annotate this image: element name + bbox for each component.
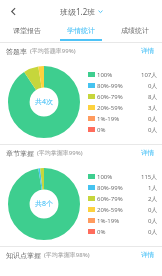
button[interactable]: 学情统计 xyxy=(54,22,108,39)
staticText: 107人 xyxy=(141,71,158,79)
staticText: (平均掌握率98%) xyxy=(44,251,90,259)
staticText: 0人 xyxy=(148,82,158,90)
staticText: (平均掌握率99%) xyxy=(37,149,83,157)
staticText: 80%-99% xyxy=(97,184,123,192)
staticText: 20%-59% xyxy=(97,206,123,214)
staticText: 60%-79% xyxy=(97,195,123,203)
staticText: 0% xyxy=(97,228,106,236)
staticText: 100% xyxy=(97,71,113,79)
staticText: 60%-79% xyxy=(97,93,123,101)
staticText: 1人 xyxy=(148,184,158,192)
staticText: 班级1.2班 xyxy=(60,6,96,17)
staticText: 章节掌握 xyxy=(6,149,34,158)
staticText: 详情 xyxy=(141,251,154,259)
staticText: 课堂报告 xyxy=(13,26,41,35)
button[interactable]: 详情 xyxy=(139,45,156,57)
staticText: 1%-19% xyxy=(97,217,120,225)
staticText: 0人 xyxy=(148,115,158,123)
staticText: 8人 xyxy=(148,93,158,101)
staticText: 20%-59% xyxy=(97,104,123,112)
staticText: 80%-99% xyxy=(97,82,123,90)
button[interactable]: Back xyxy=(4,2,22,20)
staticText: 1%-19% xyxy=(97,115,120,123)
staticText: 知识点掌握 xyxy=(6,251,41,260)
staticText: 答题率 xyxy=(6,47,27,56)
staticText: 115人 xyxy=(141,173,158,181)
staticText: 0% xyxy=(97,126,106,134)
staticText: 学情统计 xyxy=(67,26,95,35)
staticText: 共4次 xyxy=(35,97,54,107)
staticText: (平均答题率99%) xyxy=(30,47,76,55)
staticText: 共8个 xyxy=(35,199,54,209)
button[interactable]: 成绩统计 xyxy=(108,22,162,39)
button[interactable]: 班级1.2班 xyxy=(60,6,103,17)
staticText: 详情 xyxy=(141,47,154,55)
staticText: 0人 xyxy=(148,206,158,214)
staticText: 0人 xyxy=(148,228,158,236)
staticText: 详情 xyxy=(141,149,154,157)
button[interactable]: 课堂报告 xyxy=(0,22,54,39)
staticText: 3人 xyxy=(148,104,158,112)
button[interactable]: 详情 xyxy=(139,147,156,159)
button[interactable]: 详情 xyxy=(139,249,156,261)
staticText: 成绩统计 xyxy=(121,26,149,35)
staticText: 100% xyxy=(97,173,113,181)
staticText: 0人 xyxy=(148,126,158,134)
staticText: 2人 xyxy=(148,195,158,203)
staticText: 0人 xyxy=(148,217,158,225)
